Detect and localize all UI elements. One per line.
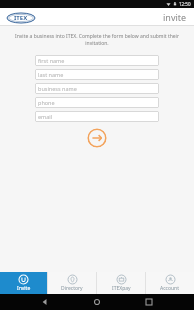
button[interactable]: business name <box>35 83 159 94</box>
staticText: ITEX <box>14 14 28 22</box>
button[interactable]: email <box>35 111 159 122</box>
staticText: Invite <box>17 285 31 292</box>
staticText: Invite a business into ITEX. Complete th… <box>8 33 186 47</box>
button[interactable]: Account <box>146 272 194 294</box>
staticText: last name <box>38 71 64 78</box>
staticText: ITEXpay <box>112 285 131 292</box>
button[interactable]: last name <box>35 69 159 80</box>
staticText: business name <box>38 85 77 92</box>
button[interactable]: ITEX home <box>6 12 36 23</box>
button[interactable]: Back <box>38 295 52 309</box>
staticText: Directory <box>61 285 83 292</box>
staticText: Account <box>160 285 180 292</box>
staticText: first name <box>38 57 65 64</box>
button[interactable]: Submit invitation <box>87 128 107 148</box>
staticText: phone <box>38 99 55 106</box>
button[interactable]: Home <box>90 295 104 309</box>
staticText: invite <box>163 11 187 23</box>
button[interactable]: Directory <box>48 272 96 294</box>
button[interactable]: Invite <box>0 272 47 294</box>
button[interactable]: ITEXpay <box>97 272 145 294</box>
staticText: email <box>38 113 53 120</box>
button[interactable]: first name <box>35 55 159 66</box>
button[interactable]: phone <box>35 97 159 108</box>
staticText: 12:50 <box>179 1 191 7</box>
button[interactable]: Recent apps <box>142 295 156 309</box>
